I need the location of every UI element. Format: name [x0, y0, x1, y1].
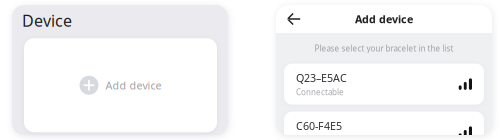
staticText: Connectable	[296, 135, 344, 140]
staticText: Device	[22, 10, 72, 31]
staticText: C60-F4E5	[296, 119, 342, 133]
button[interactable]: Back	[287, 12, 301, 26]
staticText: Add device	[105, 78, 161, 92]
button[interactable]: Q23–E5AC	[284, 64, 484, 105]
staticText: Please select your bracelet in the list	[314, 43, 453, 54]
button[interactable]: C60-F4E5	[284, 112, 484, 140]
staticText: Q23–E5AC	[296, 71, 347, 85]
staticText: Add device	[355, 12, 413, 26]
staticText: Connectable	[296, 87, 344, 97]
button[interactable]: Add device	[24, 38, 217, 132]
